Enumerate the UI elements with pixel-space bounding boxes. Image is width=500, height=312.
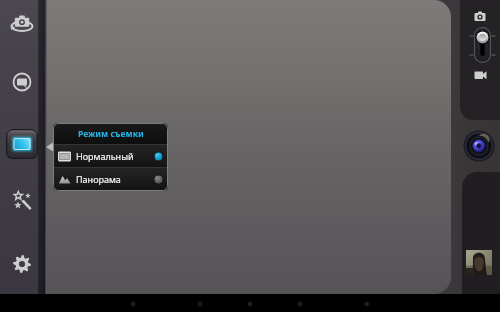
button[interactable]: Панорама — [53, 168, 168, 190]
staticText: Панорама — [76, 173, 121, 185]
button[interactable]: Shooting mode — [6, 129, 38, 159]
button[interactable]: Flash off — [6, 66, 38, 98]
staticText: Режим съемки — [78, 128, 144, 140]
button[interactable]: Video mode — [474, 70, 487, 80]
button[interactable]: Нормальный — [53, 145, 168, 167]
button[interactable]: Settings — [6, 248, 38, 280]
button[interactable]: Photo mode — [474, 11, 487, 21]
button[interactable]: Shutter — [463, 130, 495, 162]
button[interactable]: Last photo — [466, 250, 492, 275]
button[interactable]: Camera video toggle — [474, 27, 491, 63]
button[interactable]: Effects — [6, 184, 38, 216]
staticText: Нормальный — [76, 150, 134, 162]
button[interactable]: Switch camera — [6, 7, 38, 39]
